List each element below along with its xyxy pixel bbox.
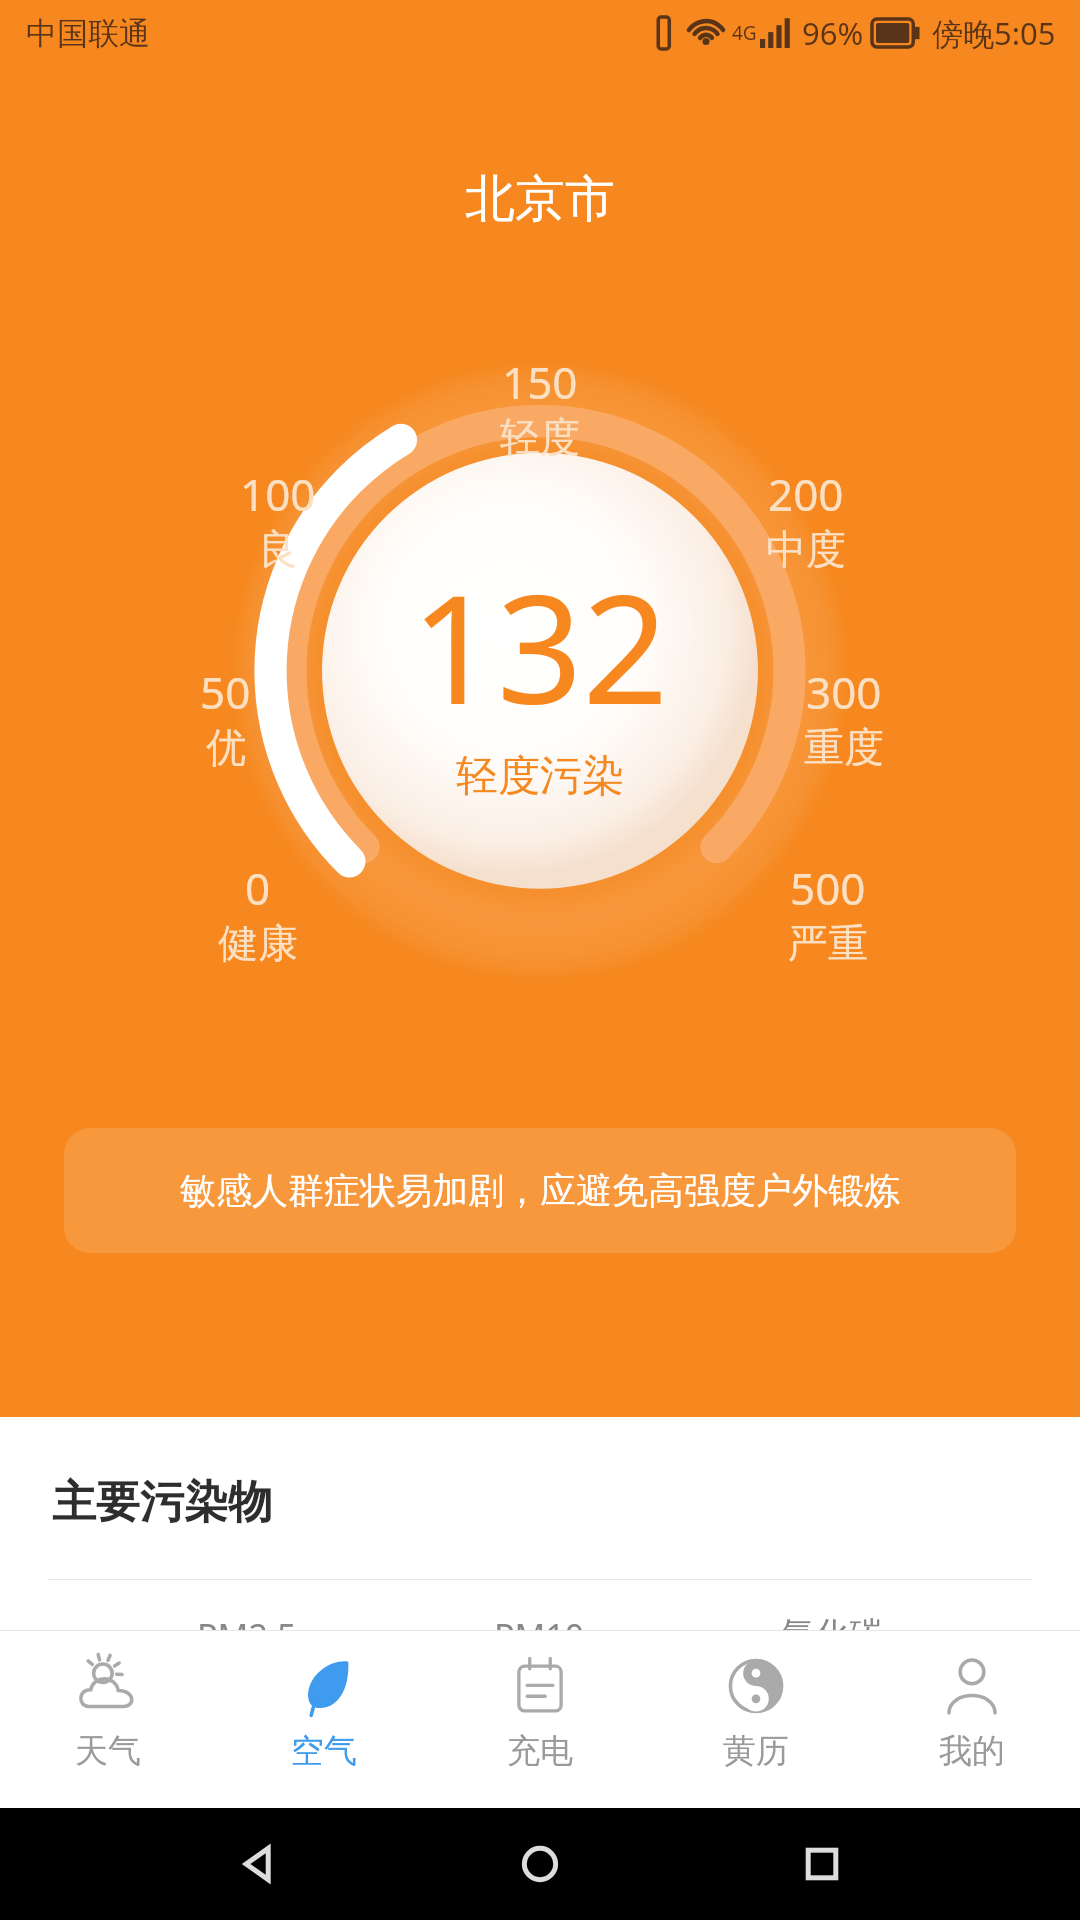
staticText: 黄历 [723,1730,789,1772]
staticText: 132 [411,544,669,748]
staticText: 50 [200,662,251,722]
staticText: 我的 [939,1730,1005,1772]
button[interactable]: 敏感人群症状易加剧，应避免高强度户外锻炼 [64,1128,1016,1253]
staticText: PM2.5 [197,1613,297,1630]
staticText: 轻度污染 [456,750,624,803]
button[interactable]: 我的 [864,1630,1080,1808]
button[interactable]: 充电 [432,1630,648,1808]
other: 天气 [76,1654,140,1718]
staticText: 氮化碳 [781,1613,883,1630]
staticText: 充电 [507,1730,573,1772]
staticText: 天气 [75,1730,141,1772]
staticText: 优 [206,722,246,772]
staticText: 主要污染物 [52,1475,272,1530]
other: 充电 [508,1654,572,1718]
staticText: 良 [258,524,298,574]
other: 我的 [940,1654,1004,1718]
button[interactable]: 黄历 [648,1630,864,1808]
button[interactable]: 空气 [216,1630,432,1808]
staticText: 4G [732,20,757,46]
other: 空气 [292,1654,356,1718]
staticText: 敏感人群症状易加剧，应避免高强度户外锻炼 [106,1168,974,1213]
button[interactable]: 天气 [0,1630,216,1808]
staticText: 空气 [291,1730,357,1772]
button[interactable]: Recents [799,1841,845,1887]
button[interactable]: Home [517,1841,563,1887]
staticText: 中国联通 [26,14,150,53]
staticText: 傍晚5:05 [932,12,1056,54]
staticText: 0 [245,858,271,918]
other: 黄历 [724,1654,788,1718]
staticText: PM10 [494,1613,585,1630]
staticText: 北京市 [465,168,615,231]
button[interactable]: Back [236,1841,282,1887]
staticText: 500 [790,858,866,918]
staticText: 300 [806,662,882,722]
staticText: 健康 [218,918,298,968]
staticText: 150 [502,352,578,412]
staticText: 严重 [788,918,868,968]
staticText: 中度 [766,524,846,574]
staticText: 96% [802,12,864,54]
staticText: 100 [240,464,316,524]
staticText: 重度 [804,722,884,772]
staticText: 轻度 [500,412,580,462]
staticText: 200 [768,464,844,524]
